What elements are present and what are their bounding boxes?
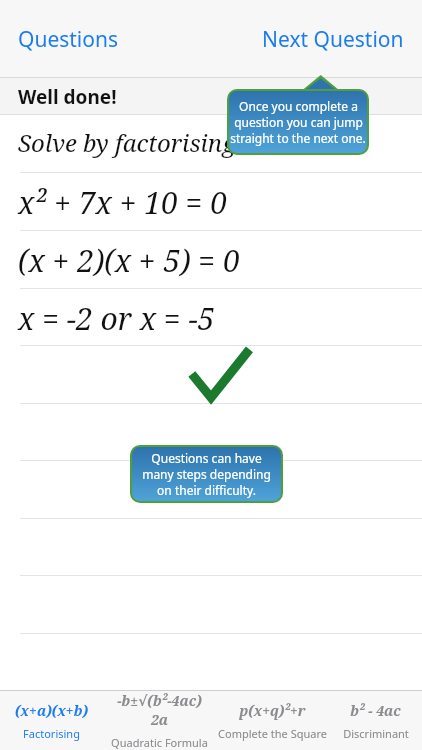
staticText: Factorising xyxy=(23,726,80,741)
staticText: Questions can have xyxy=(151,450,262,466)
other: Tip: Next question xyxy=(227,75,369,155)
staticText: −b±√(b²−4ac) 2a xyxy=(117,691,202,729)
staticText: on their difficulty. xyxy=(157,482,256,498)
other: Tip: Multiple steps xyxy=(130,445,283,503)
button[interactable]: (x+a)(x+b) xyxy=(0,691,103,750)
staticText: Quadratic Formula xyxy=(111,735,208,750)
staticText: Questions xyxy=(18,25,119,54)
staticText: b² − 4ac xyxy=(350,701,401,720)
staticText: x² + 7x + 10 = 0 xyxy=(18,182,227,223)
button[interactable]: p(x+q)²+r xyxy=(216,691,329,750)
button[interactable]: b² − 4ac xyxy=(329,691,422,750)
button[interactable]: Questions xyxy=(10,19,127,60)
staticText: Next Question xyxy=(262,25,404,54)
button[interactable]: Next Question xyxy=(254,19,412,60)
staticText: Complete the Square xyxy=(218,726,327,741)
staticText: many steps depending xyxy=(142,466,271,482)
staticText: Well done! xyxy=(18,84,117,110)
staticText: Once you complete a xyxy=(239,98,358,114)
staticText: p(x+q)²+r xyxy=(239,701,306,720)
staticText: Solve by factorising xyxy=(18,126,236,159)
button[interactable]: −b±√(b²−4ac) 2a xyxy=(103,691,216,750)
staticText: x = −2 or x = −5 xyxy=(18,298,215,339)
staticText: Discriminant xyxy=(343,726,409,741)
staticText: (x + 2)(x + 5) = 0 xyxy=(18,240,240,281)
staticText: question you can jump xyxy=(234,114,363,130)
staticText: straight to the next one. xyxy=(230,130,366,146)
staticText: (x+a)(x+b) xyxy=(15,701,88,720)
